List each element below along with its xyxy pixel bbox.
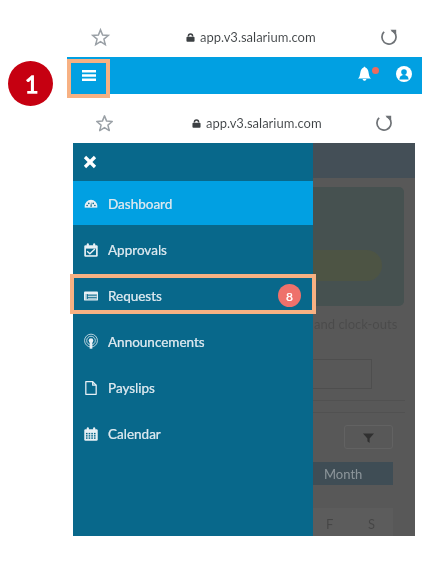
button[interactable]: Reload (380, 28, 398, 46)
staticText: Calendar (108, 426, 161, 442)
button[interactable]: Requests (73, 273, 313, 319)
staticText: app.v3.salarium.com (200, 29, 316, 45)
button[interactable]: Account (396, 66, 412, 82)
button[interactable]: Dashboard (73, 181, 313, 227)
button[interactable]: Payslips (73, 365, 313, 411)
button[interactable]: Calendar (73, 411, 313, 457)
staticText: Announcements (108, 334, 205, 350)
staticText: Approvals (108, 242, 167, 258)
button[interactable]: Announcements (73, 319, 313, 365)
button[interactable]: Bookmark (92, 29, 109, 46)
button[interactable]: Close menu (79, 151, 101, 173)
staticText: Record your clock-ins and clock-outs (189, 316, 398, 332)
button[interactable]: Approvals (73, 227, 313, 273)
staticText: Payslips (108, 380, 155, 396)
staticText: Month (324, 466, 363, 482)
staticText: Dashboard (108, 196, 173, 212)
staticText: Requests (108, 288, 162, 304)
staticText: S (368, 516, 376, 532)
button[interactable]: Reload (375, 114, 393, 132)
button[interactable]: Bookmark (96, 115, 113, 132)
button[interactable]: Open navigation menu (71, 63, 106, 94)
staticText: 1 (25, 70, 39, 98)
staticText: 8 (286, 289, 293, 303)
staticText: F (326, 516, 334, 532)
button[interactable]: Notifications (357, 66, 372, 81)
staticText: app.v3.salarium.com (206, 115, 322, 131)
